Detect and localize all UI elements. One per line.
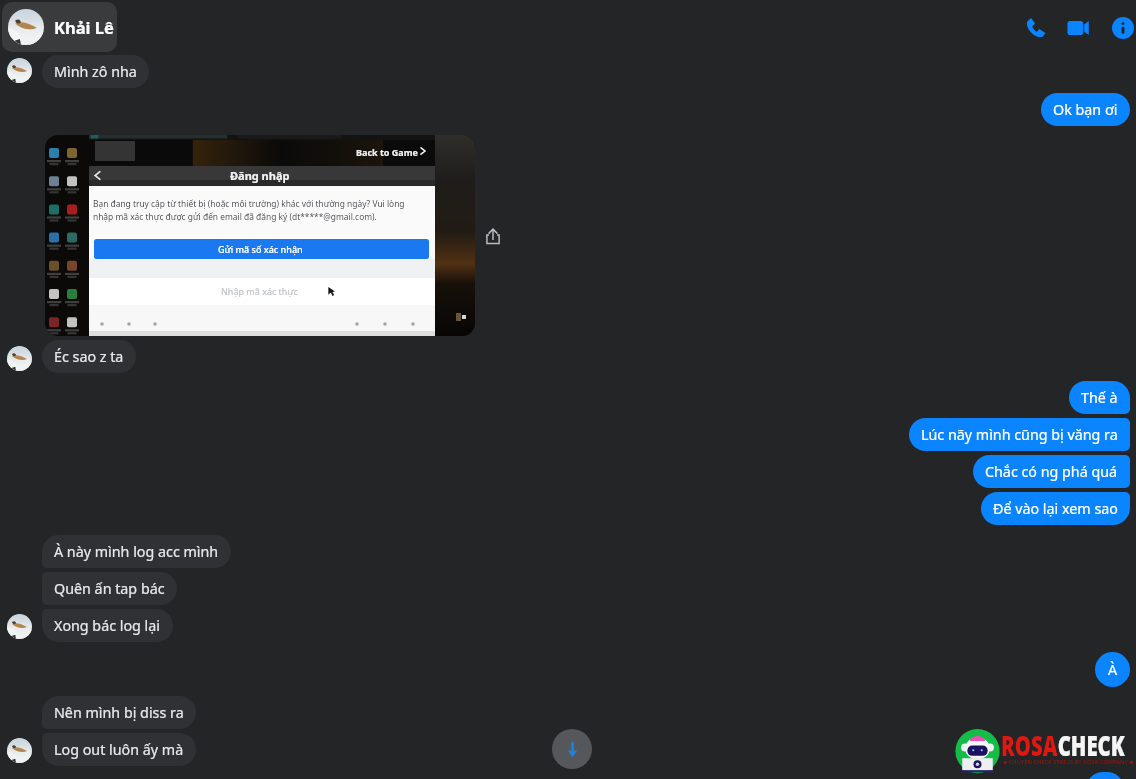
button[interactable]: À này mình log acc mình bbox=[42, 535, 231, 568]
button[interactable]: Scroll to bottom bbox=[552, 729, 592, 769]
button[interactable]: Conversation information bbox=[1100, 5, 1136, 50]
button[interactable]: Chắc có ng phá quá bbox=[973, 455, 1130, 488]
staticText: ROSA bbox=[1001, 725, 1058, 764]
button[interactable]: Video call bbox=[1055, 5, 1100, 50]
staticText: ◆ CHUYÊN CHECK STATUS BY ROSA COMPANY ◆ bbox=[1003, 758, 1134, 766]
staticText: CHECK bbox=[1058, 725, 1125, 764]
button[interactable]: Ok bạn ơi bbox=[1041, 93, 1130, 126]
staticText: Éc sao z ta bbox=[54, 347, 124, 366]
staticText: À bbox=[1108, 660, 1118, 679]
staticText: nhập mã xác thực được gửi đến email đã đ… bbox=[93, 211, 377, 222]
staticText: Khải Lê bbox=[54, 16, 114, 38]
button[interactable]: Thế à bbox=[1069, 381, 1130, 414]
staticText: Mình zô nha bbox=[54, 62, 137, 81]
staticText: Back to Game bbox=[356, 146, 418, 158]
staticText: Nhập mã xác thực bbox=[221, 285, 298, 297]
button[interactable]: Nên mình bị diss ra bbox=[42, 696, 196, 729]
button[interactable]: Lúc nãy mình cũng bị văng ra bbox=[909, 418, 1130, 451]
staticText: Xong bác log lại bbox=[54, 616, 161, 635]
button[interactable]: Khải Lê bbox=[2, 2, 117, 52]
staticText: Log out luôn ấy mà bbox=[54, 740, 184, 759]
staticText: Gửi mã số xác nhận bbox=[218, 243, 303, 255]
button[interactable]: Mình zô nha bbox=[42, 55, 149, 88]
button[interactable]: Photo attachment bbox=[45, 135, 475, 336]
staticText: Quên ấn tap bác bbox=[54, 579, 165, 598]
staticText: Để vào lại xem sao bbox=[993, 499, 1118, 518]
button[interactable]: Share bbox=[484, 227, 502, 245]
staticText: Chắc có ng phá quá bbox=[985, 462, 1118, 481]
button[interactable]: Éc sao z ta bbox=[42, 340, 136, 373]
button[interactable]: Xong bác log lại bbox=[42, 609, 173, 642]
button[interactable]: Log out luôn ấy mà bbox=[42, 733, 196, 766]
staticText: Bạn đang truy cập từ thiết bị (hoặc môi … bbox=[93, 198, 405, 209]
staticText: Đăng nhập bbox=[230, 168, 290, 183]
staticText: Ok bạn ơi bbox=[1053, 100, 1118, 119]
button[interactable]: À bbox=[1095, 652, 1130, 687]
button[interactable]: Để vào lại xem sao bbox=[981, 492, 1130, 525]
staticText: Thế à bbox=[1081, 388, 1118, 407]
staticText: Nên mình bị diss ra bbox=[54, 703, 184, 722]
button[interactable]: Message bbox=[1086, 772, 1124, 779]
staticText: À này mình log acc mình bbox=[54, 542, 219, 561]
staticText: Lúc nãy mình cũng bị văng ra bbox=[921, 425, 1118, 444]
button[interactable]: Voice call bbox=[1013, 5, 1058, 50]
button[interactable]: Quên ấn tap bác bbox=[42, 572, 177, 605]
